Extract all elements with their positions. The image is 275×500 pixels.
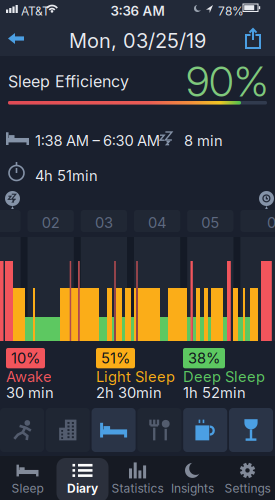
staticText: 06 bbox=[267, 214, 275, 231]
staticText: AT&T bbox=[21, 4, 50, 18]
button[interactable]: Diary bbox=[55, 459, 110, 499]
staticText: Insights bbox=[171, 481, 214, 496]
staticText: 1:38 AM – 6:30 AM bbox=[35, 132, 160, 149]
button[interactable]: Sleep bbox=[0, 459, 55, 499]
staticText: 05 bbox=[201, 214, 219, 231]
staticText: 02 bbox=[42, 214, 60, 231]
staticText: 1h 52min bbox=[183, 384, 246, 401]
staticText: 51% bbox=[101, 349, 130, 367]
button[interactable]: Settings bbox=[220, 459, 275, 499]
staticText: 90% bbox=[186, 57, 268, 106]
staticText: Mon, 03/25/19 bbox=[69, 29, 206, 53]
button[interactable]: Share bbox=[237, 24, 269, 53]
staticText: 2h 30min bbox=[96, 384, 162, 401]
staticText: 3:36 AM bbox=[110, 3, 164, 19]
button[interactable]: Statistics bbox=[110, 459, 165, 499]
button[interactable]: Work bbox=[46, 408, 90, 452]
staticText: Sleep Efficiency bbox=[8, 72, 129, 91]
button[interactable]: Back bbox=[0, 25, 32, 52]
staticText: Awake bbox=[6, 368, 52, 385]
staticText: 38% bbox=[188, 349, 220, 367]
button[interactable]: Alcohol bbox=[229, 408, 273, 452]
staticText: Diary bbox=[67, 481, 98, 496]
staticText: Settings bbox=[224, 481, 270, 496]
staticText: 78% bbox=[218, 4, 244, 18]
staticText: 03 bbox=[95, 214, 113, 231]
button[interactable]: Coffee bbox=[183, 408, 227, 452]
staticText: Sleep bbox=[11, 481, 43, 496]
staticText: Statistics bbox=[111, 481, 163, 496]
button[interactable]: Sleep notes bbox=[5, 191, 20, 209]
button[interactable]: Bed bbox=[92, 408, 136, 452]
staticText: 04 bbox=[148, 214, 166, 231]
button[interactable]: Insights bbox=[165, 459, 220, 499]
staticText: Deep Sleep bbox=[183, 368, 265, 385]
staticText: 8 min bbox=[184, 132, 223, 149]
button[interactable]: Food bbox=[137, 408, 181, 452]
staticText: 10% bbox=[11, 349, 40, 367]
button[interactable]: Alarm bbox=[259, 191, 274, 209]
staticText: Light Sleep bbox=[96, 368, 175, 385]
button[interactable]: Sports bbox=[0, 408, 44, 452]
staticText: 30 min bbox=[6, 384, 54, 401]
staticText: 4h 51min bbox=[35, 167, 98, 184]
